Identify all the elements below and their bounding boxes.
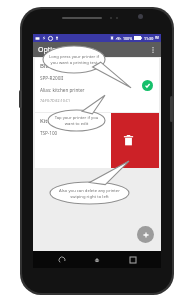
staticText: SPP-R200II	[40, 75, 64, 81]
button[interactable]: Bluetooth printer	[35, 58, 159, 112]
button[interactable]: Recent apps	[126, 253, 140, 267]
staticText: PM	[155, 36, 159, 40]
staticText: TSP-100	[40, 130, 58, 136]
staticText: Long press your printer if you want a pr…	[48, 54, 100, 65]
staticText: Bluetooth printer	[40, 62, 89, 70]
button[interactable]: More options	[146, 43, 159, 56]
staticText: Alias: kitchen printer	[40, 87, 85, 93]
staticText: Options	[38, 45, 65, 55]
button[interactable]: Kitchen printer	[35, 113, 111, 168]
staticText: 100%	[123, 36, 133, 41]
staticText: 11:30	[144, 36, 154, 41]
staticText: Also you can delete any printer swiping …	[55, 188, 124, 199]
staticText: 74:F0:7D:E2:10:C1	[40, 98, 71, 103]
staticText: Kitchen printer	[40, 117, 83, 125]
button[interactable]: Back	[55, 253, 69, 267]
other: Connected	[142, 80, 153, 91]
staticText: Tap your printer if you want to edit	[53, 115, 100, 126]
button[interactable]: Delete printer	[35, 113, 159, 168]
button[interactable]: Home	[90, 253, 104, 267]
button[interactable]: Add printer	[137, 226, 154, 243]
